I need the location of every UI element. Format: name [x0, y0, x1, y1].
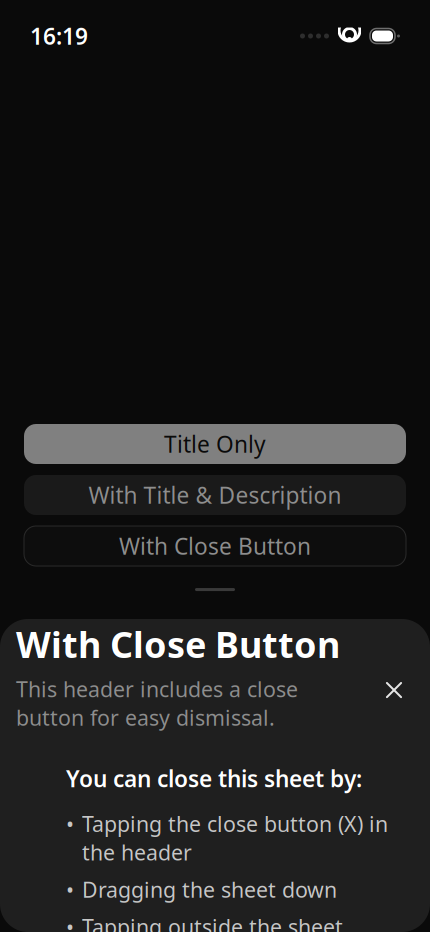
- staticText: Dragging the sheet down: [82, 875, 337, 904]
- staticText: With Close Button: [119, 531, 311, 561]
- button[interactable]: Close: [374, 670, 414, 710]
- staticText: •: [66, 810, 74, 838]
- staticText: •: [66, 913, 74, 932]
- button[interactable]: With Close Button: [24, 526, 406, 566]
- staticText: With Close Button: [16, 620, 340, 668]
- staticText: This header includes a close button for …: [16, 675, 298, 732]
- staticText: Tapping outside the sheet: [82, 913, 343, 932]
- button[interactable]: Title Only: [24, 424, 406, 464]
- staticText: You can close this sheet by:: [66, 763, 362, 794]
- staticText: Tapping the close button (X) in the head…: [82, 810, 388, 866]
- staticText: Title Only: [164, 429, 266, 459]
- staticText: •: [66, 875, 74, 904]
- staticText: With Title & Description: [88, 480, 341, 510]
- button[interactable]: With Title & Description: [24, 475, 406, 515]
- staticText: 16:19: [30, 21, 88, 51]
